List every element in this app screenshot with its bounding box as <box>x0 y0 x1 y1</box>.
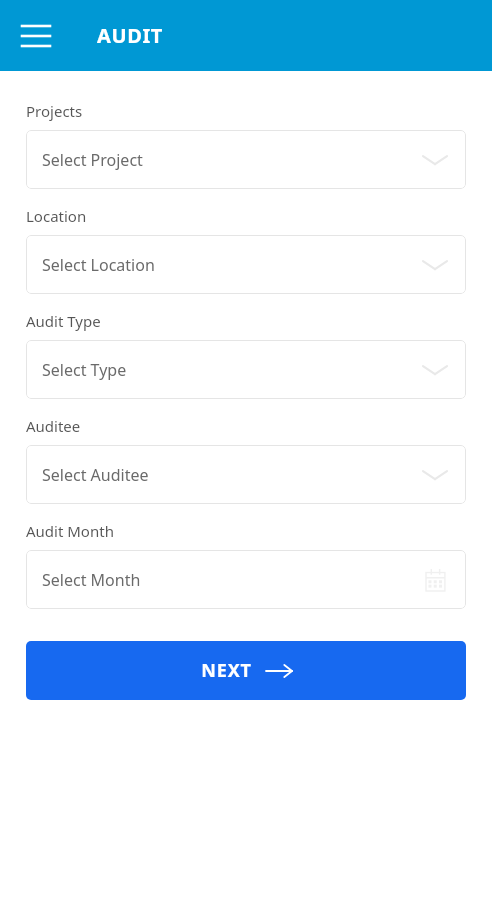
staticText: Select Project <box>42 149 422 171</box>
staticText: NEXT <box>201 658 252 683</box>
button[interactable]: NEXT <box>26 641 466 700</box>
staticText: Select Auditee <box>42 464 422 486</box>
button[interactable]: Select Type <box>26 340 466 399</box>
button[interactable]: Select Location <box>26 235 466 294</box>
button[interactable]: Select Project <box>26 130 466 189</box>
staticText: Projects <box>26 101 83 121</box>
staticText: Location <box>26 206 87 226</box>
staticText: Audit Month <box>26 521 114 541</box>
button[interactable]: Open navigation menu <box>14 14 58 58</box>
staticText: Select Type <box>42 359 422 381</box>
button[interactable]: Select Month <box>26 550 466 609</box>
staticText: AUDIT <box>97 22 163 49</box>
staticText: Auditee <box>26 416 81 436</box>
staticText: Audit Type <box>26 311 101 331</box>
staticText: Select Month <box>42 569 426 591</box>
staticText: Select Location <box>42 254 422 276</box>
button[interactable]: Select Auditee <box>26 445 466 504</box>
